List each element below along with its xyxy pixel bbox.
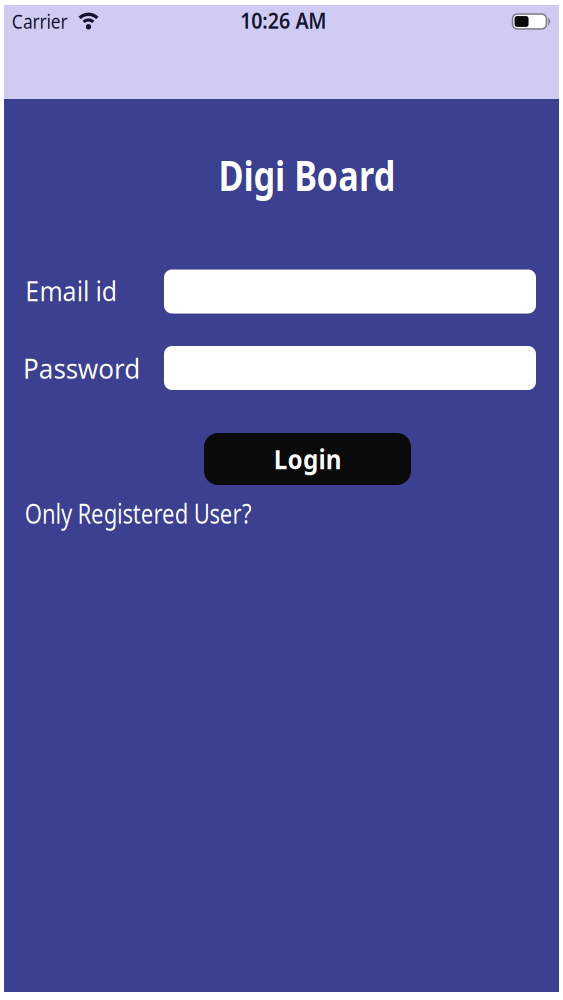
staticText: Email id [19, 272, 122, 309]
button[interactable]: Email id [164, 269, 536, 313]
button[interactable]: Password [164, 346, 536, 390]
staticText: Only Registered User? [0, 494, 281, 532]
staticText: Password [18, 349, 144, 387]
staticText: 10:26 AM [236, 6, 330, 35]
staticText: Login [270, 441, 344, 477]
button[interactable]: Only Registered User? [0, 494, 281, 532]
staticText: Digi Board [200, 148, 413, 202]
button[interactable]: Login [204, 433, 411, 485]
staticText: Carrier [7, 8, 71, 34]
